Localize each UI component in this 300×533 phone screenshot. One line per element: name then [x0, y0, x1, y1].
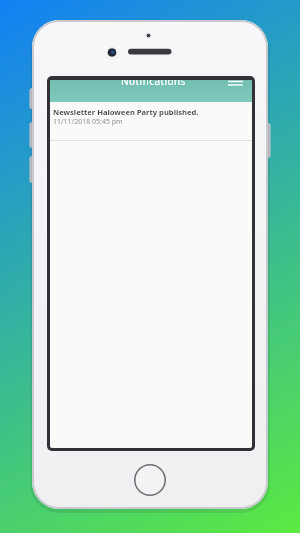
button[interactable]: Newsletter Haloween Party published.	[50, 102, 252, 127]
button[interactable]	[228, 80, 252, 102]
staticText: Newsletter Haloween Party published.	[53, 107, 199, 117]
staticText: Notifications	[121, 80, 186, 88]
button[interactable]: Notifications	[50, 80, 252, 102]
staticText: 11/11/2018 05:45 pm	[53, 117, 123, 127]
